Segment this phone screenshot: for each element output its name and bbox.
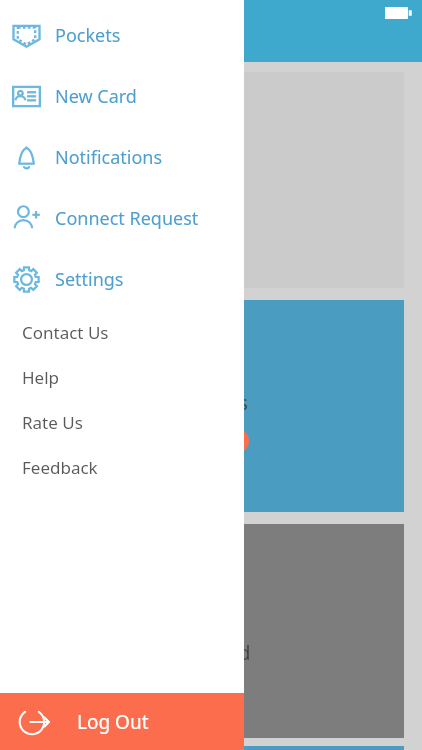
button[interactable]: Settings: [0, 249, 244, 310]
button[interactable]: Notifications: [0, 127, 244, 188]
button[interactable]: Connect Request: [0, 188, 244, 249]
button[interactable]: Log Out: [0, 693, 244, 750]
staticText: Pockets: [55, 23, 121, 48]
staticText: Rate Us: [22, 411, 83, 434]
staticText: Settings: [55, 267, 124, 292]
staticText: Help: [22, 366, 60, 389]
button[interactable]: New Card: [10, 524, 404, 738]
button[interactable]: Requests, 5 pending: [10, 300, 404, 512]
staticText: Requests: [166, 390, 248, 416]
button[interactable]: New Card: [0, 66, 244, 127]
staticText: Contact Us: [22, 321, 109, 344]
button[interactable]: Contact Us: [0, 310, 244, 355]
button[interactable]: Pockets: [0, 5, 244, 66]
button[interactable]: Help: [0, 355, 244, 400]
staticText: New Card: [55, 84, 137, 109]
button[interactable]: Rate Us: [0, 400, 244, 445]
staticText: Notifications: [55, 145, 163, 170]
button[interactable]: [10, 746, 404, 750]
staticText: New Card: [164, 640, 251, 666]
staticText: Connect Request: [55, 206, 199, 231]
staticText: Feedback: [22, 456, 98, 479]
button[interactable]: Feedback: [0, 445, 244, 490]
staticText: Log Out: [77, 709, 149, 735]
button[interactable]: Share: [10, 72, 404, 288]
